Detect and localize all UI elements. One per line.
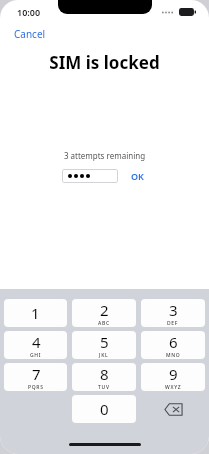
button[interactable]: Cancel [11, 25, 49, 43]
staticText: 7 [32, 364, 41, 384]
button[interactable]: 3 [141, 299, 205, 327]
staticText: WXYZ [165, 384, 182, 391]
staticText: 2 [100, 300, 109, 320]
staticText: 8 [100, 364, 109, 384]
staticText: 3 [169, 300, 178, 320]
staticText: 1 [31, 303, 40, 323]
staticText: MNO [166, 352, 181, 359]
button[interactable] [62, 169, 118, 183]
staticText: OK [131, 170, 144, 182]
button[interactable]: 4 [4, 331, 67, 359]
button[interactable]: 7 [4, 363, 67, 391]
button[interactable]: Backspace [141, 395, 205, 423]
staticText: JKL [99, 352, 109, 359]
button[interactable]: 5 [72, 331, 136, 359]
staticText: 0 [100, 399, 109, 419]
button[interactable]: 9 [141, 363, 205, 391]
staticText: 6 [169, 332, 178, 352]
staticText: 9 [169, 364, 178, 384]
staticText: 10:00 [17, 6, 41, 18]
staticText: TUV [98, 384, 110, 391]
staticText: GHI [30, 352, 42, 359]
staticText: 4 [32, 332, 41, 352]
button[interactable]: 0 [72, 395, 136, 423]
staticText: Cancel [14, 27, 46, 41]
staticText: ABC [98, 320, 110, 327]
staticText: 5 [100, 332, 109, 352]
staticText: 3 attempts remaining [0, 150, 209, 161]
button[interactable]: 2 [72, 299, 136, 327]
button[interactable]: 1 [4, 299, 67, 327]
button[interactable]: OK [128, 168, 147, 184]
staticText: PQRS [28, 384, 44, 391]
staticText: SIM is locked [0, 51, 209, 74]
staticText: DEF [167, 320, 179, 327]
button[interactable]: 6 [141, 331, 205, 359]
button[interactable]: 8 [72, 363, 136, 391]
